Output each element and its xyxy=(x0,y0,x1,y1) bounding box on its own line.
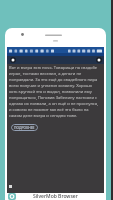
staticText: Вот и вчера всю ночь. Товарищи на свадьб… xyxy=(9,65,101,119)
staticText: SilverMob Browser xyxy=(33,193,78,200)
staticText: ПОДРОБНЕЕ xyxy=(14,125,35,130)
button[interactable]: ПОДРОБНЕЕ xyxy=(14,125,35,130)
button[interactable]: Back xyxy=(5,28,106,200)
button[interactable]: Back xyxy=(10,57,16,63)
button[interactable]: More options xyxy=(96,57,102,63)
button[interactable]: SilverMob Browser xyxy=(5,193,106,200)
